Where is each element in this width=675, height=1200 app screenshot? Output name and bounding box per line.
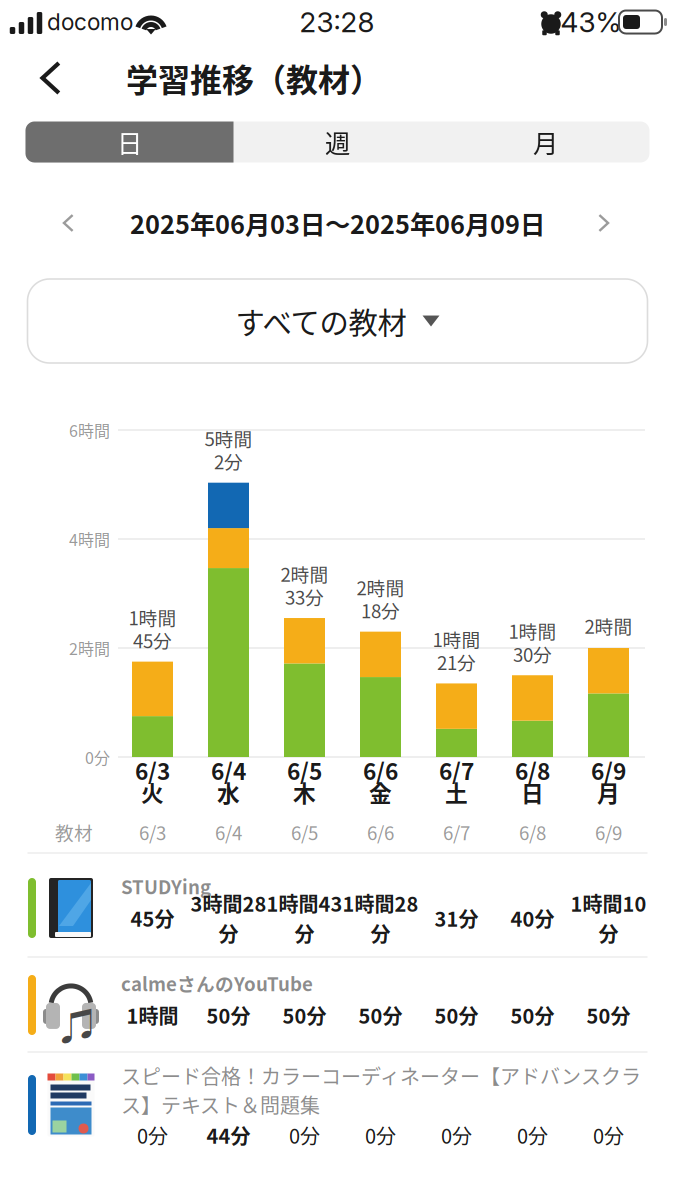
staticText: 45分 (130, 903, 174, 932)
staticText: 0分 (289, 1120, 320, 1149)
staticText: 日 (117, 124, 142, 160)
staticText: 6/3 (139, 818, 166, 845)
staticText: 分 (598, 918, 618, 947)
staticText: 6/5 (287, 754, 322, 786)
staticText: 18分 (361, 597, 400, 624)
staticText: 日 (521, 776, 544, 808)
staticText: 6/6 (363, 754, 398, 786)
staticText: 6/7 (439, 754, 474, 786)
staticText: 4時間 (69, 527, 110, 551)
staticText: STUDYing (121, 872, 211, 899)
staticText: 0分 (85, 745, 110, 769)
staticText: 1時間 (432, 625, 480, 652)
staticText: 分 (370, 918, 390, 947)
staticText: docomo (47, 8, 133, 36)
staticText: スピード合格！カラーコーディネーター【アドバンスクラス】テキスト＆問題集 (121, 1061, 641, 1119)
button[interactable]: Next week (575, 195, 631, 251)
staticText: 0分 (517, 1120, 548, 1149)
staticText: 44分 (206, 1120, 250, 1149)
staticText: 50分 (510, 1000, 554, 1029)
staticText: 43% (560, 5, 621, 39)
staticText: 分 (218, 918, 238, 947)
staticText: 2時間 (280, 560, 328, 587)
staticText: 50分 (434, 1000, 478, 1029)
staticText: 33分 (285, 583, 324, 610)
staticText: 1時間10 (570, 888, 646, 917)
staticText: 6/7 (443, 818, 470, 845)
staticText: 6/8 (519, 818, 546, 845)
staticText: 木 (293, 776, 316, 808)
staticText: 40分 (510, 903, 554, 932)
staticText: 6/4 (211, 754, 246, 786)
button[interactable]: 日 (25, 121, 233, 162)
staticText: 2時間 (584, 612, 632, 639)
staticText: 学習推移（教材） (126, 55, 382, 101)
staticText: 2時間 (69, 636, 110, 660)
staticText: 1時間28 (342, 888, 418, 917)
staticText: 3時間28 (190, 888, 266, 917)
staticText: 6/6 (367, 818, 394, 845)
button[interactable]: Back (17, 48, 87, 108)
staticText: 5時間 (204, 425, 252, 452)
staticText: 0分 (365, 1120, 396, 1149)
staticText: 21分 (437, 648, 476, 675)
staticText: 6時間 (69, 418, 110, 442)
staticText: 30分 (513, 640, 552, 667)
staticText: 教材 (55, 818, 93, 845)
staticText: 2分 (214, 448, 243, 475)
staticText: 月 (533, 124, 558, 160)
staticText: 1時間 (128, 604, 176, 631)
staticText: calmeさんのYouTube (121, 969, 313, 996)
staticText: 31分 (434, 903, 478, 932)
staticText: すべての教材 (235, 300, 406, 342)
staticText: 1時間 (508, 617, 556, 644)
staticText: 2025年06月03日〜2025年06月09日 (130, 205, 545, 241)
staticText: 6/9 (591, 754, 626, 786)
staticText: 50分 (358, 1000, 402, 1029)
staticText: 水 (217, 776, 240, 808)
button[interactable]: すべての教材 (27, 279, 647, 363)
staticText: 1時間 (126, 1000, 178, 1029)
staticText: 0分 (593, 1120, 624, 1149)
staticText: 50分 (586, 1000, 630, 1029)
staticText: 0分 (137, 1120, 168, 1149)
staticText: 23:28 (299, 5, 374, 39)
staticText: 45分 (133, 627, 172, 654)
staticText: 分 (294, 918, 314, 947)
staticText: 50分 (206, 1000, 250, 1029)
button[interactable]: 週 (233, 121, 441, 162)
staticText: 6/5 (291, 818, 318, 845)
staticText: 1時間43 (266, 888, 342, 917)
staticText: 金 (369, 776, 392, 808)
staticText: 50分 (282, 1000, 326, 1029)
staticText: 6/4 (215, 818, 242, 845)
button[interactable]: 月 (441, 121, 649, 162)
staticText: 2時間 (356, 574, 404, 601)
staticText: 火 (141, 776, 164, 808)
staticText: ♫ (61, 998, 97, 1050)
staticText: 土 (445, 776, 468, 808)
staticText: 0分 (441, 1120, 472, 1149)
staticText: 6/3 (135, 754, 170, 786)
staticText: 月 (597, 776, 620, 808)
staticText: 週 (325, 124, 350, 160)
staticText: 6/8 (515, 754, 550, 786)
button[interactable]: Previous week (41, 195, 97, 251)
staticText: 6/9 (595, 818, 622, 845)
